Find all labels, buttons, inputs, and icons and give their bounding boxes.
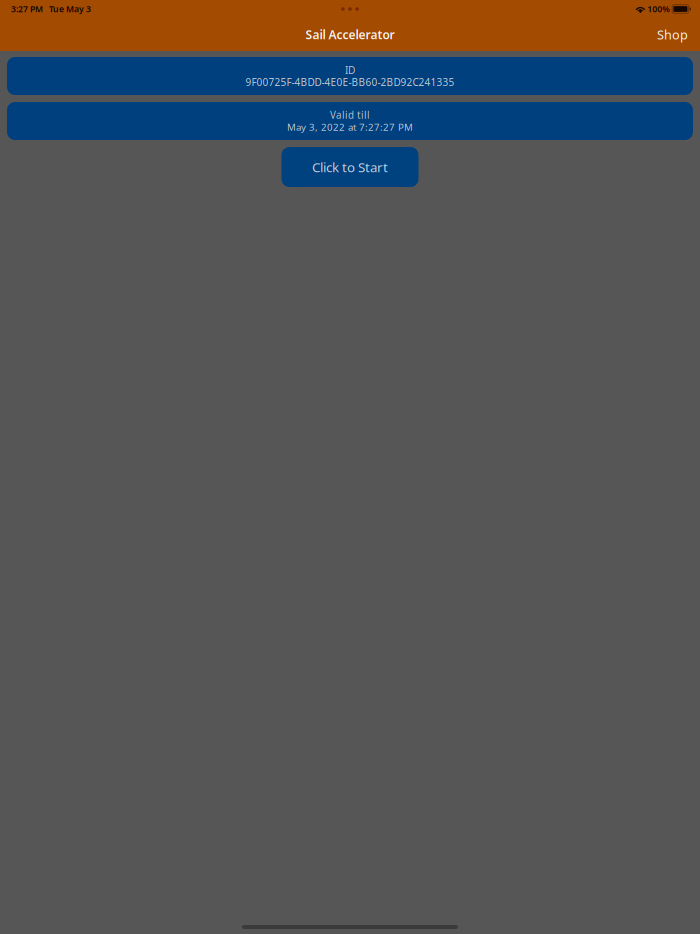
staticText: Click to Start bbox=[312, 158, 388, 176]
button[interactable]: Shop bbox=[650, 20, 695, 48]
staticText: 3:27 PM Tue May 3 bbox=[11, 3, 91, 15]
staticText: Valid till bbox=[330, 108, 370, 122]
staticText: May 3, 2022 at 7:27:27 PM bbox=[287, 120, 413, 134]
staticText: 100% bbox=[645, 3, 672, 15]
staticText: Shop bbox=[657, 26, 688, 43]
button[interactable]: Click to Start bbox=[281, 147, 418, 187]
staticText: Sail Accelerator bbox=[305, 26, 394, 43]
staticText: ID bbox=[345, 63, 355, 77]
staticText: 9F00725F-4BDD-4E0E-BB60-2BD92C241335 bbox=[245, 75, 454, 89]
